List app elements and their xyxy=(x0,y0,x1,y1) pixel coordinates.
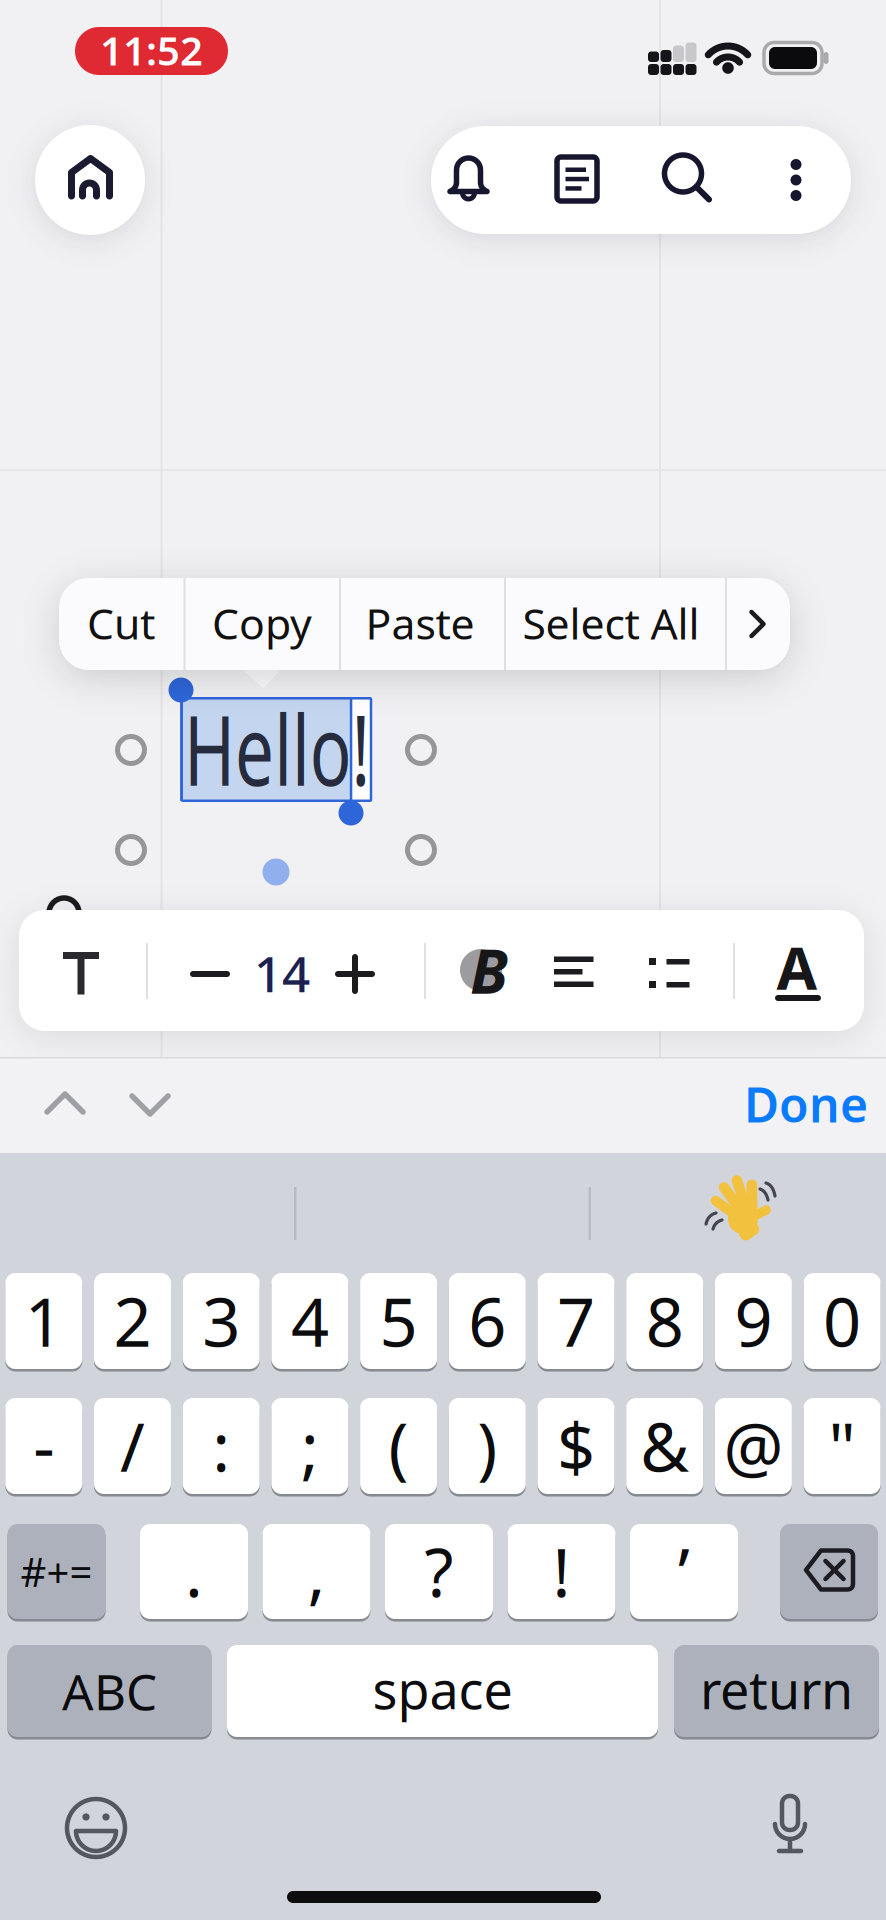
staticText: return xyxy=(700,1654,853,1724)
staticText: Cut xyxy=(87,595,155,651)
staticText: #+= xyxy=(20,1545,92,1598)
staticText: 14 xyxy=(254,940,310,1006)
staticText: 2 xyxy=(113,1277,151,1365)
staticText: ) xyxy=(477,1402,497,1490)
staticText: Paste xyxy=(365,595,474,651)
staticText: : xyxy=(212,1402,230,1490)
staticText: 8 xyxy=(646,1277,684,1365)
staticText: - xyxy=(33,1402,54,1490)
staticText: Select All xyxy=(522,595,699,651)
staticText: ; xyxy=(301,1402,319,1490)
staticText: 4 xyxy=(291,1277,329,1365)
staticText: ABC xyxy=(62,1658,157,1724)
staticText: B xyxy=(470,929,508,1011)
staticText: ? xyxy=(424,1527,453,1616)
staticText: / xyxy=(120,1402,145,1490)
staticText: " xyxy=(829,1402,856,1490)
staticText: 5 xyxy=(380,1277,418,1365)
staticText: 7 xyxy=(557,1277,595,1365)
staticText: $ xyxy=(557,1402,595,1490)
staticText: & xyxy=(640,1402,689,1490)
staticText: Hello! xyxy=(146,683,408,813)
staticText: 9 xyxy=(734,1277,772,1365)
staticText: ’ xyxy=(678,1527,690,1616)
staticText: A xyxy=(776,928,817,1006)
staticText: ( xyxy=(389,1402,409,1490)
staticText: 11:52 xyxy=(100,23,203,76)
staticText: . xyxy=(185,1527,203,1616)
staticText: Copy xyxy=(212,595,312,651)
staticText: ! xyxy=(552,1527,570,1616)
staticText: Done xyxy=(744,1072,868,1136)
staticText: space xyxy=(372,1654,512,1724)
staticText: @ xyxy=(723,1402,783,1490)
staticText: 0 xyxy=(823,1277,861,1365)
staticText: 3 xyxy=(202,1277,240,1365)
staticText: , xyxy=(307,1527,325,1616)
staticText: 1 xyxy=(25,1277,63,1365)
staticText: 6 xyxy=(468,1277,506,1365)
